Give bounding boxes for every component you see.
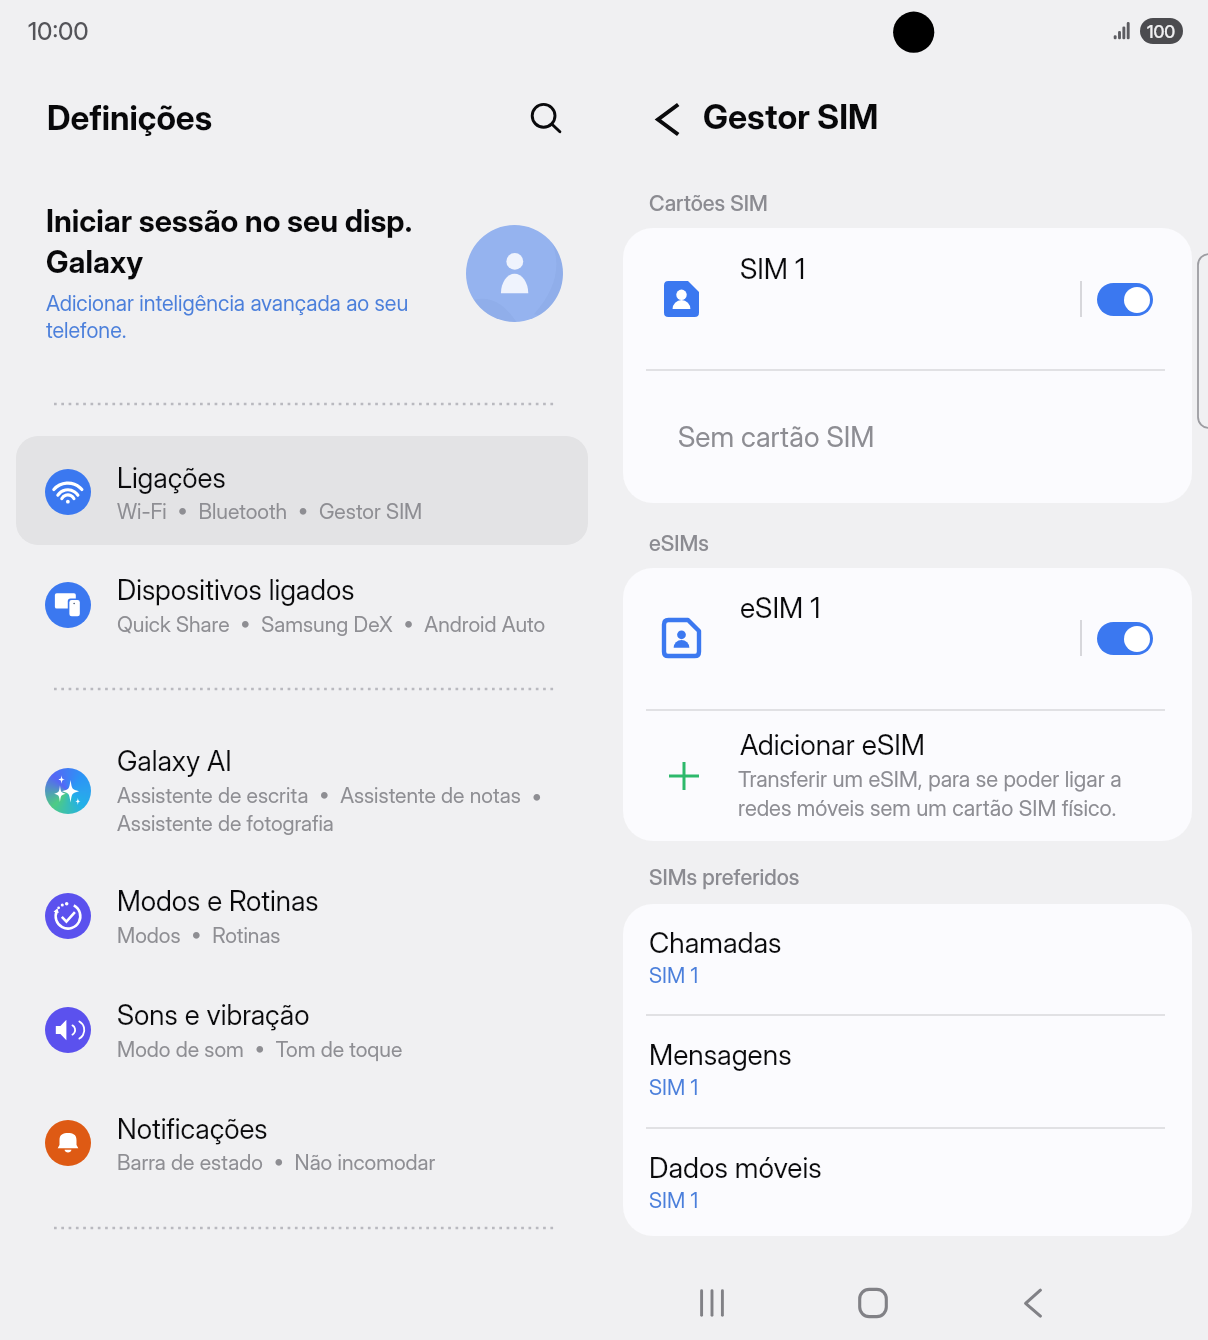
- staticText: eSIM 1: [740, 591, 821, 625]
- staticText: telefone.: [46, 317, 127, 343]
- button[interactable]: Recentes: [676, 1267, 748, 1339]
- button[interactable]: Ativar: [1097, 283, 1153, 316]
- button[interactable]: [623, 1014, 1192, 1127]
- button[interactable]: [623, 904, 1192, 1015]
- staticText: Dados móveis: [649, 1151, 822, 1185]
- staticText: Modos e Rotinas: [117, 884, 319, 918]
- staticText: Gestor SIM: [703, 96, 879, 137]
- staticText: SIMs preferidos: [649, 864, 800, 890]
- staticText: Chamadas: [649, 926, 782, 960]
- staticText: Modos • Rotinas: [117, 922, 281, 948]
- staticText: Definições: [47, 98, 213, 139]
- staticText: Iniciar sessão no seu disp.: [46, 202, 413, 239]
- button[interactable]: [16, 974, 588, 1084]
- button[interactable]: [16, 436, 588, 546]
- button[interactable]: Voltar: [997, 1267, 1069, 1339]
- staticText: Adicionar inteligência avançada ao seu: [46, 290, 409, 316]
- staticText: Ligações: [117, 461, 226, 495]
- staticText: Barra de estado • Não incomodar: [117, 1149, 436, 1175]
- staticText: Sons e vibração: [117, 998, 310, 1032]
- staticText: eSIMs: [649, 530, 709, 556]
- staticText: Wi-Fi • Bluetooth • Gestor SIM: [117, 498, 423, 524]
- staticText: Assistente de fotografia: [117, 810, 334, 836]
- button[interactable]: [623, 1127, 1192, 1236]
- button[interactable]: [623, 712, 1192, 838]
- staticText: Transferir um eSIM, para se poder ligar …: [738, 766, 1122, 793]
- button[interactable]: [623, 593, 1192, 683]
- staticText: Sem cartão SIM: [678, 420, 875, 454]
- staticText: SIM 1: [740, 252, 806, 286]
- button[interactable]: [16, 1087, 588, 1197]
- staticText: 100: [1147, 21, 1176, 42]
- button[interactable]: [623, 254, 1192, 344]
- button[interactable]: Início: [837, 1267, 909, 1339]
- staticText: Assistente de escrita • Assistente de no…: [117, 782, 543, 808]
- staticText: Cartões SIM: [649, 190, 768, 216]
- button[interactable]: [16, 720, 588, 860]
- button[interactable]: [16, 549, 588, 659]
- button[interactable]: [16, 860, 588, 970]
- button[interactable]: [40, 195, 570, 340]
- staticText: Notificações: [117, 1112, 268, 1146]
- staticText: SIM 1: [649, 1074, 699, 1100]
- staticText: Quick Share • Samsung DeX • Android Auto: [117, 611, 546, 637]
- staticText: Adicionar eSIM: [740, 728, 925, 762]
- staticText: Dispositivos ligados: [117, 573, 355, 607]
- staticText: SIM 1: [649, 962, 699, 988]
- staticText: redes móveis sem um cartão SIM físico.: [738, 795, 1117, 822]
- staticText: Mensagens: [649, 1038, 792, 1072]
- staticText: Galaxy AI: [117, 744, 232, 778]
- staticText: Modo de som • Tom de toque: [117, 1036, 403, 1062]
- button[interactable]: Ativar: [1097, 622, 1153, 655]
- staticText: Galaxy: [46, 243, 144, 280]
- staticText: SIM 1: [649, 1187, 699, 1213]
- button[interactable]: Voltar: [634, 90, 690, 146]
- staticText: 10:00: [28, 16, 89, 46]
- button[interactable]: Pesquisar: [516, 88, 572, 144]
